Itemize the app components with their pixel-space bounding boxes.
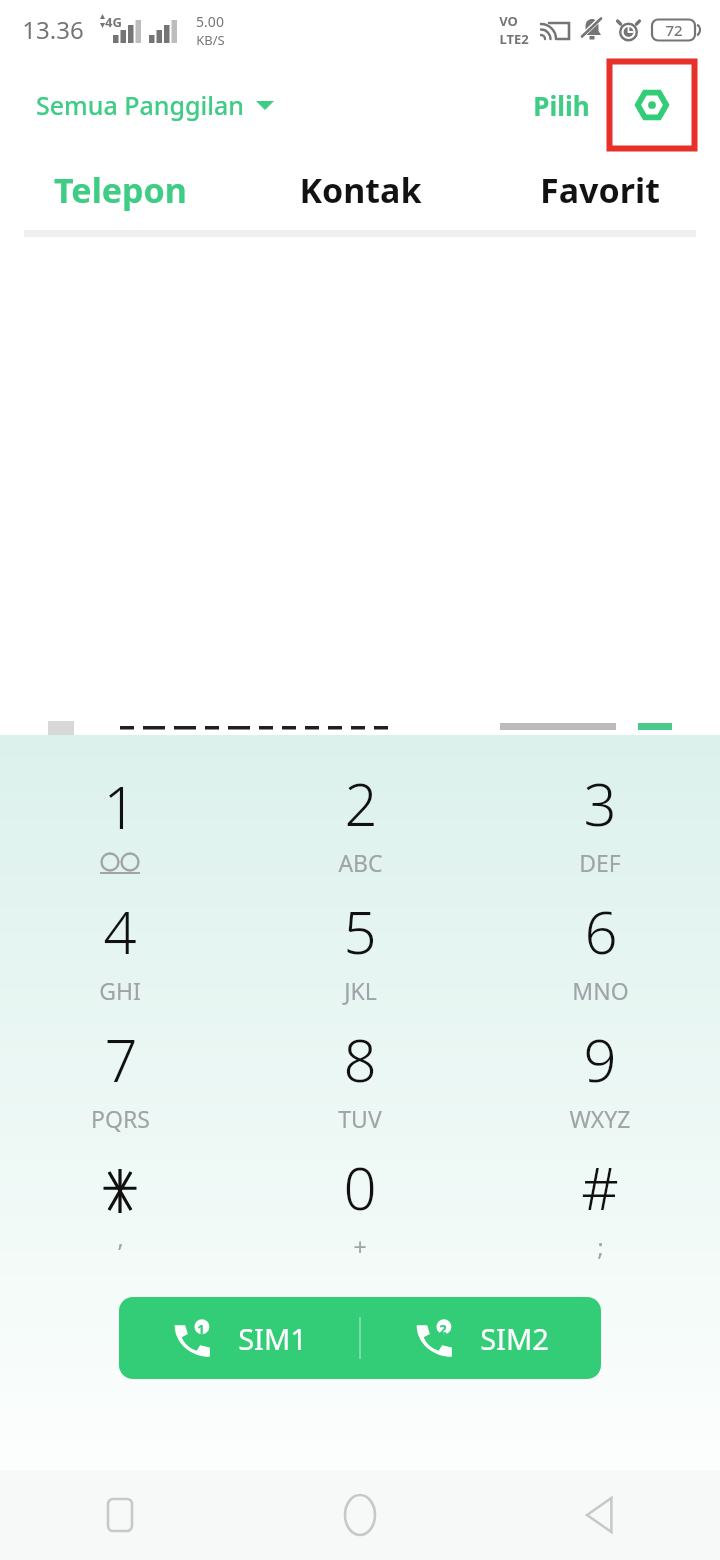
- staticText: #: [581, 1148, 619, 1227]
- button[interactable]: 1: [119, 1297, 359, 1379]
- staticText: 72: [665, 20, 683, 40]
- staticText: KB/S: [196, 31, 225, 49]
- staticText: 7: [104, 1020, 138, 1099]
- staticText: GHI: [99, 975, 141, 1006]
- staticText: 4G: [105, 13, 122, 31]
- staticText: Semua Panggilan: [36, 88, 244, 122]
- staticText: 4: [103, 892, 137, 971]
- staticText: 2: [439, 1320, 447, 1338]
- staticText: 0: [343, 1148, 377, 1227]
- staticText: WXYZ: [569, 1103, 631, 1134]
- button[interactable]: 2: [361, 1297, 601, 1379]
- staticText: SIM2: [480, 1319, 549, 1358]
- staticText: TUV: [338, 1103, 382, 1134]
- staticText: 3: [583, 764, 617, 843]
- staticText: 2: [344, 764, 378, 843]
- button[interactable]: 5: [240, 885, 480, 1013]
- button[interactable]: ,: [0, 1141, 240, 1269]
- button[interactable]: Home: [240, 1470, 480, 1560]
- staticText: 6: [584, 892, 618, 971]
- button[interactable]: 2: [240, 757, 480, 885]
- staticText: ABC: [338, 847, 383, 878]
- staticText: LTE2: [499, 30, 529, 48]
- staticText: +: [353, 1231, 367, 1262]
- button[interactable]: 8: [240, 1013, 480, 1141]
- button[interactable]: 6: [480, 885, 720, 1013]
- button[interactable]: 9: [480, 1013, 720, 1141]
- staticText: Telepon: [54, 167, 187, 213]
- button[interactable]: 3: [480, 757, 720, 885]
- button[interactable]: Settings: [621, 74, 683, 136]
- staticText: VO: [499, 12, 518, 30]
- button[interactable]: Pilih: [523, 80, 600, 131]
- button[interactable]: 0: [240, 1141, 480, 1269]
- staticText: PQRS: [91, 1103, 150, 1134]
- staticText: MNO: [572, 975, 629, 1006]
- staticText: 5: [343, 892, 377, 971]
- staticText: Kontak: [299, 167, 422, 213]
- button[interactable]: 7: [0, 1013, 240, 1141]
- button[interactable]: Kontak: [240, 150, 480, 230]
- staticText: JKL: [344, 975, 377, 1006]
- button[interactable]: Telepon: [0, 150, 240, 230]
- staticText: 5.00: [196, 12, 224, 31]
- button[interactable]: #: [480, 1141, 720, 1269]
- staticText: 8: [343, 1020, 377, 1099]
- staticText: ;: [597, 1231, 604, 1262]
- button[interactable]: Semua Panggilan: [36, 88, 274, 122]
- button[interactable]: Favorit: [480, 150, 720, 230]
- staticText: 1: [197, 1320, 205, 1338]
- button[interactable]: 4: [0, 885, 240, 1013]
- staticText: SIM1: [238, 1319, 307, 1358]
- staticText: 9: [583, 1020, 617, 1099]
- button[interactable]: Back: [480, 1470, 720, 1560]
- staticText: Favorit: [540, 167, 660, 213]
- staticText: 13.36: [22, 13, 84, 46]
- button[interactable]: Recents: [0, 1470, 240, 1560]
- staticText: ,: [117, 1222, 124, 1253]
- staticText: 1: [103, 767, 137, 846]
- staticText: DEF: [579, 847, 621, 878]
- button[interactable]: 1: [0, 757, 240, 885]
